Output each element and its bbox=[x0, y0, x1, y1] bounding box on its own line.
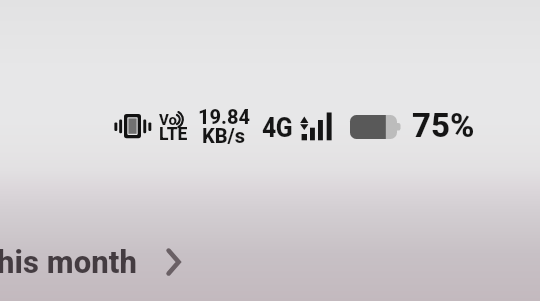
staticText: Vo bbox=[159, 111, 177, 129]
staticText: LTE bbox=[159, 124, 188, 145]
staticText: his month bbox=[0, 244, 138, 280]
staticText: 19.84 bbox=[198, 105, 251, 128]
staticText: 4G bbox=[262, 111, 293, 144]
button[interactable]: his month bbox=[0, 241, 184, 283]
staticText: 75% bbox=[412, 106, 475, 145]
staticText: KB/s bbox=[202, 124, 246, 147]
